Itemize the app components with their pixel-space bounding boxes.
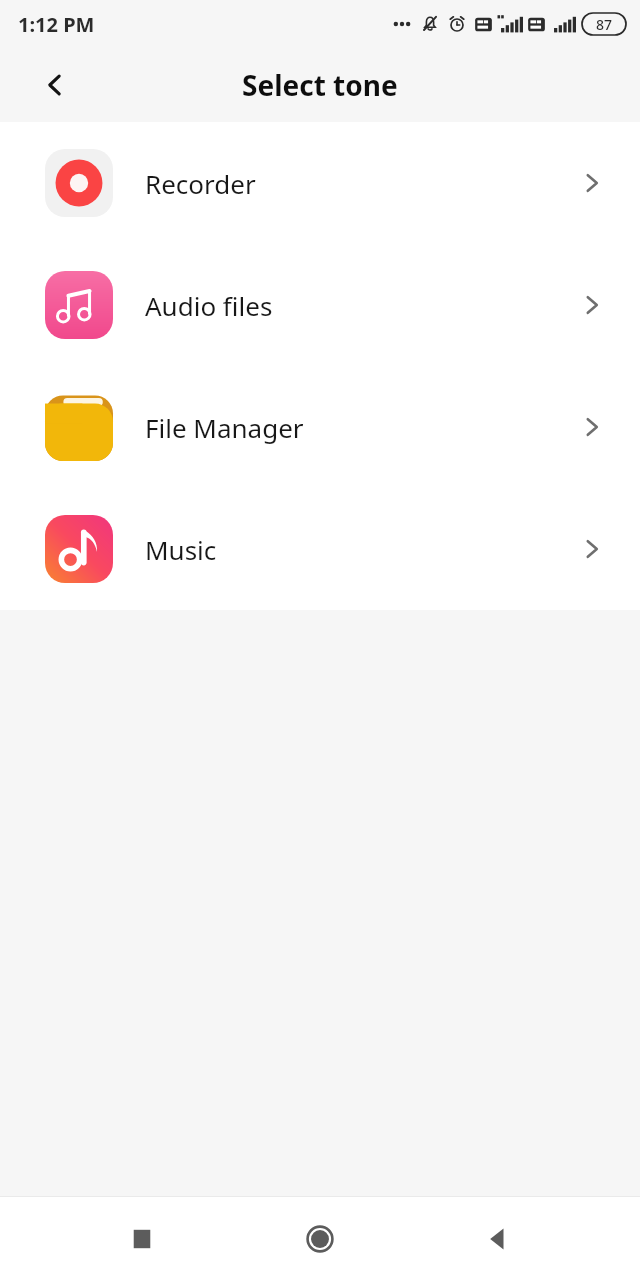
button[interactable]: Home [284,1203,356,1275]
button[interactable]: Recorder [0,122,640,244]
button[interactable]: File Manager [0,366,640,488]
button[interactable]: Audio files [0,244,640,366]
staticText: 1:12 PM [18,11,95,38]
staticText: Audio files [145,288,577,323]
staticText: Recorder [145,166,577,201]
button[interactable]: Recents [106,1203,178,1275]
staticText: Music [145,532,577,567]
staticText: Select tone [242,66,398,104]
staticText: 87 [596,15,613,34]
button[interactable]: Music [0,488,640,610]
button[interactable]: Back [27,57,83,113]
staticText: File Manager [145,410,577,445]
button[interactable]: Back [462,1203,534,1275]
